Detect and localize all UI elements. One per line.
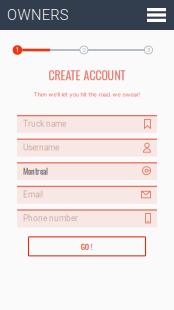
button[interactable]: Username: [17, 139, 157, 157]
staticText: S: [60, 6, 69, 24]
button[interactable]: GO !: [28, 237, 145, 256]
staticText: R: [50, 6, 59, 24]
button[interactable]: Truck name: [17, 115, 157, 133]
staticText: Email: [23, 190, 43, 200]
staticText: O: [7, 6, 17, 24]
staticText: N: [31, 6, 41, 24]
staticText: Then we'll let you hit the road, we swea…: [33, 91, 140, 98]
staticText: GO !: [81, 241, 93, 252]
staticText: 3: [147, 46, 150, 53]
button[interactable]: Phone number: [17, 209, 157, 227]
button[interactable]: Email: [17, 186, 157, 204]
staticText: Truck name: [23, 119, 66, 129]
staticText: CREATE ACCOUNT: [48, 66, 125, 84]
staticText: Montreal: [23, 165, 48, 177]
staticText: Phone number: [23, 213, 78, 223]
staticText: 2: [82, 46, 85, 53]
staticText: 1: [15, 46, 19, 54]
staticText: E: [42, 6, 50, 24]
button[interactable]: Montreal: [17, 162, 157, 180]
staticText: W: [18, 6, 31, 24]
staticText: Username: [23, 143, 59, 152]
button[interactable]: Menu: [143, 4, 170, 26]
